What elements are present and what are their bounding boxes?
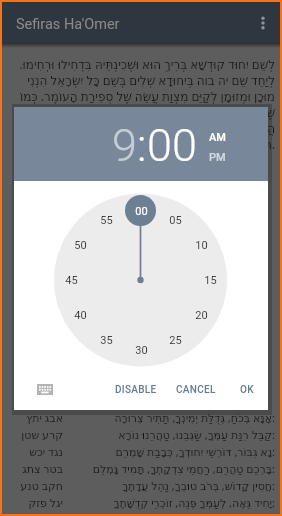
button[interactable]: CANCEL <box>167 377 225 403</box>
staticText: שקו צית <box>7 512 63 516</box>
staticText: חֲסִין קָדוֹשׁ, בְּרֹב טוּבְךָ, נַהֵל עֲ… <box>71 478 275 493</box>
button[interactable]: 55 <box>92 211 120 229</box>
button[interactable]: 40 <box>66 306 94 324</box>
staticText: 00 <box>135 205 148 218</box>
staticText: 15 <box>204 274 217 287</box>
staticText: 25 <box>169 334 182 347</box>
button[interactable]: PM <box>209 151 226 164</box>
button[interactable]: 05 <box>161 211 189 229</box>
staticText: קרע שטן <box>7 427 63 442</box>
staticText: בטר צתג <box>7 461 63 476</box>
button[interactable]: 00 <box>127 202 155 220</box>
button[interactable]: 50 <box>66 236 94 254</box>
staticText: קַבֵּל רִנַּת עַמְּךָ, שַׂגְּבֵנוּ, טַהֲ… <box>71 427 275 442</box>
staticText: שַׁוְעָתֵנוּ קַבֵּל וּשְׁמַע צַעֲקָתֵנוּ… <box>71 512 275 516</box>
button[interactable]: AM <box>209 131 226 144</box>
button[interactable]: 25 <box>161 331 189 349</box>
staticText: לְשֵׁם יִחוּד קוּדְשָׁא בְּרִיךְ הוּא וּ… <box>7 56 275 152</box>
staticText: 55 <box>100 214 113 227</box>
button[interactable]: More options <box>251 11 275 35</box>
button[interactable]: 9 <box>112 119 137 172</box>
button[interactable]: 00 <box>147 119 197 172</box>
staticText: 30 <box>135 344 148 357</box>
staticText: אָנָּא בְּכֹחַ, גְּדֻלַּת יְמִינְךָ, תַּ… <box>71 410 275 425</box>
staticText: נגד יכש <box>7 444 63 459</box>
staticText: בָּרְכֵם טַהֲרֵם, רַחֲמֵי צִדְקָתְךָ, תָ… <box>71 461 275 476</box>
staticText: יגל פזק <box>7 495 63 510</box>
staticText: 45 <box>65 274 78 287</box>
button[interactable]: 10 <box>187 236 215 254</box>
button[interactable]: Switch to keyboard input <box>33 377 57 401</box>
staticText: 10 <box>195 239 208 252</box>
button[interactable]: 35 <box>92 331 120 349</box>
button[interactable]: 15 <box>196 271 224 289</box>
staticText: 50 <box>74 239 87 252</box>
button[interactable]: OK <box>231 377 263 403</box>
button[interactable]: 20 <box>187 306 215 324</box>
staticText: 40 <box>74 309 87 322</box>
staticText: אבג יתץ <box>7 410 63 425</box>
staticText: יָחִיד גֵּאֶה, לְעַמְּךָ פְּנֵה, זוֹכְרֵ… <box>71 495 275 510</box>
staticText: 20 <box>195 309 208 322</box>
staticText: 05 <box>169 214 182 227</box>
staticText: : <box>137 119 147 172</box>
button[interactable]: 30 <box>127 341 155 359</box>
staticText: חקב טנע <box>7 478 63 493</box>
button[interactable]: DISABLE <box>106 377 166 403</box>
staticText: 35 <box>100 334 113 347</box>
button[interactable]: 45 <box>57 271 85 289</box>
staticText: Sefiras Ha'Omer <box>16 16 120 33</box>
staticText: נָא גִבּוֹר, דּוֹרְשֵׁי יִחוּדְךָ, כְּבָ… <box>71 444 275 459</box>
